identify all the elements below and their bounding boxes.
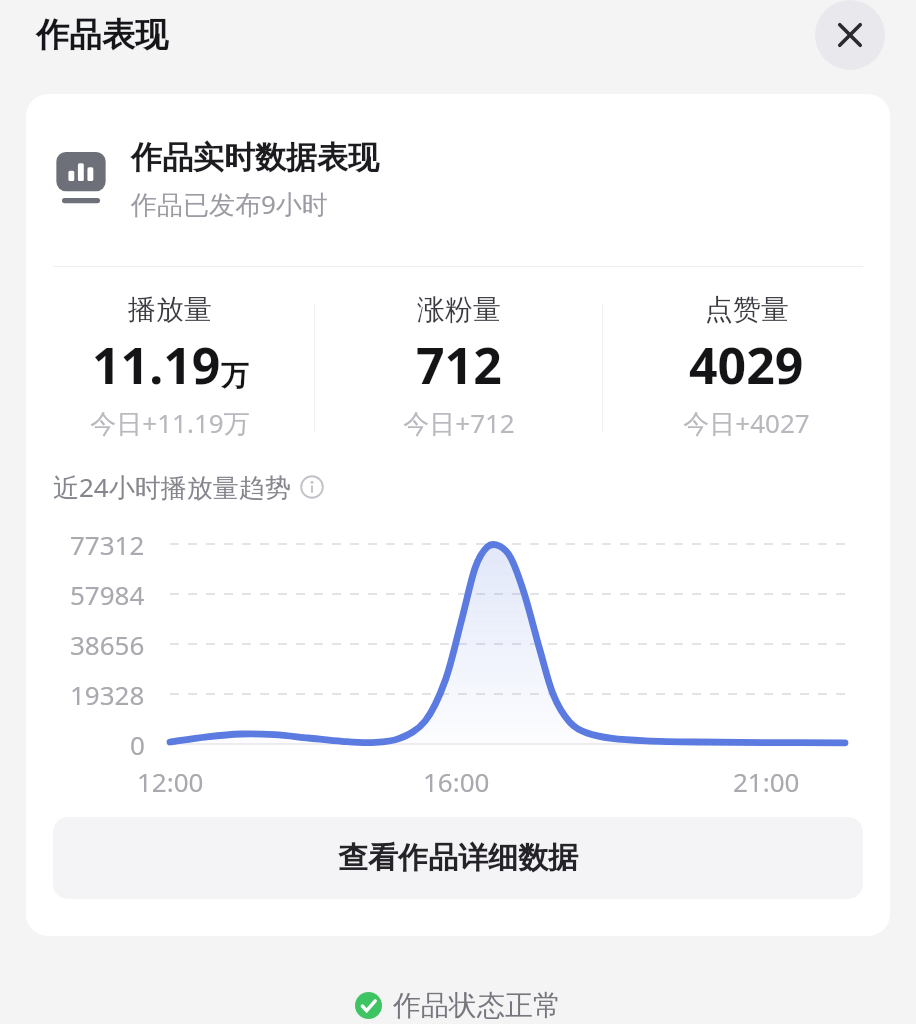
staticText: 0: [130, 727, 145, 762]
other: 说明: [300, 475, 324, 499]
staticText: 57984: [70, 577, 145, 612]
staticText: 涨粉量: [417, 292, 501, 327]
staticText: 今日+4027: [683, 405, 810, 441]
staticText: 作品状态正常: [393, 988, 561, 1023]
staticText: 点赞量: [705, 292, 789, 327]
staticText: 今日+11.19万: [90, 405, 250, 441]
staticText: 11.19: [92, 331, 221, 399]
button[interactable]: 播放量: [26, 292, 314, 441]
staticText: 4029: [689, 331, 804, 399]
staticText: 万: [221, 358, 249, 393]
staticText: 16:00: [423, 764, 490, 799]
staticText: 19328: [70, 677, 145, 712]
staticText: 712: [416, 331, 502, 399]
staticText: 近24小时播放量趋势: [53, 469, 291, 505]
staticText: 77312: [70, 527, 145, 562]
staticText: 38656: [70, 627, 145, 662]
staticText: 查看作品详细数据: [338, 839, 578, 877]
staticText: 播放量: [128, 292, 212, 327]
staticText: 作品实时数据表现: [131, 138, 379, 177]
staticText: 作品表现: [36, 14, 168, 56]
staticText: 今日+712: [403, 405, 515, 441]
staticText: 作品已发布9小时: [131, 186, 328, 222]
staticText: 12:00: [137, 764, 204, 799]
button[interactable]: 关闭: [815, 0, 885, 70]
staticText: 21:00: [733, 764, 800, 799]
button[interactable]: 查看作品详细数据: [53, 817, 863, 899]
button[interactable]: 涨粉量: [315, 292, 602, 441]
button[interactable]: 点赞量: [603, 292, 890, 441]
